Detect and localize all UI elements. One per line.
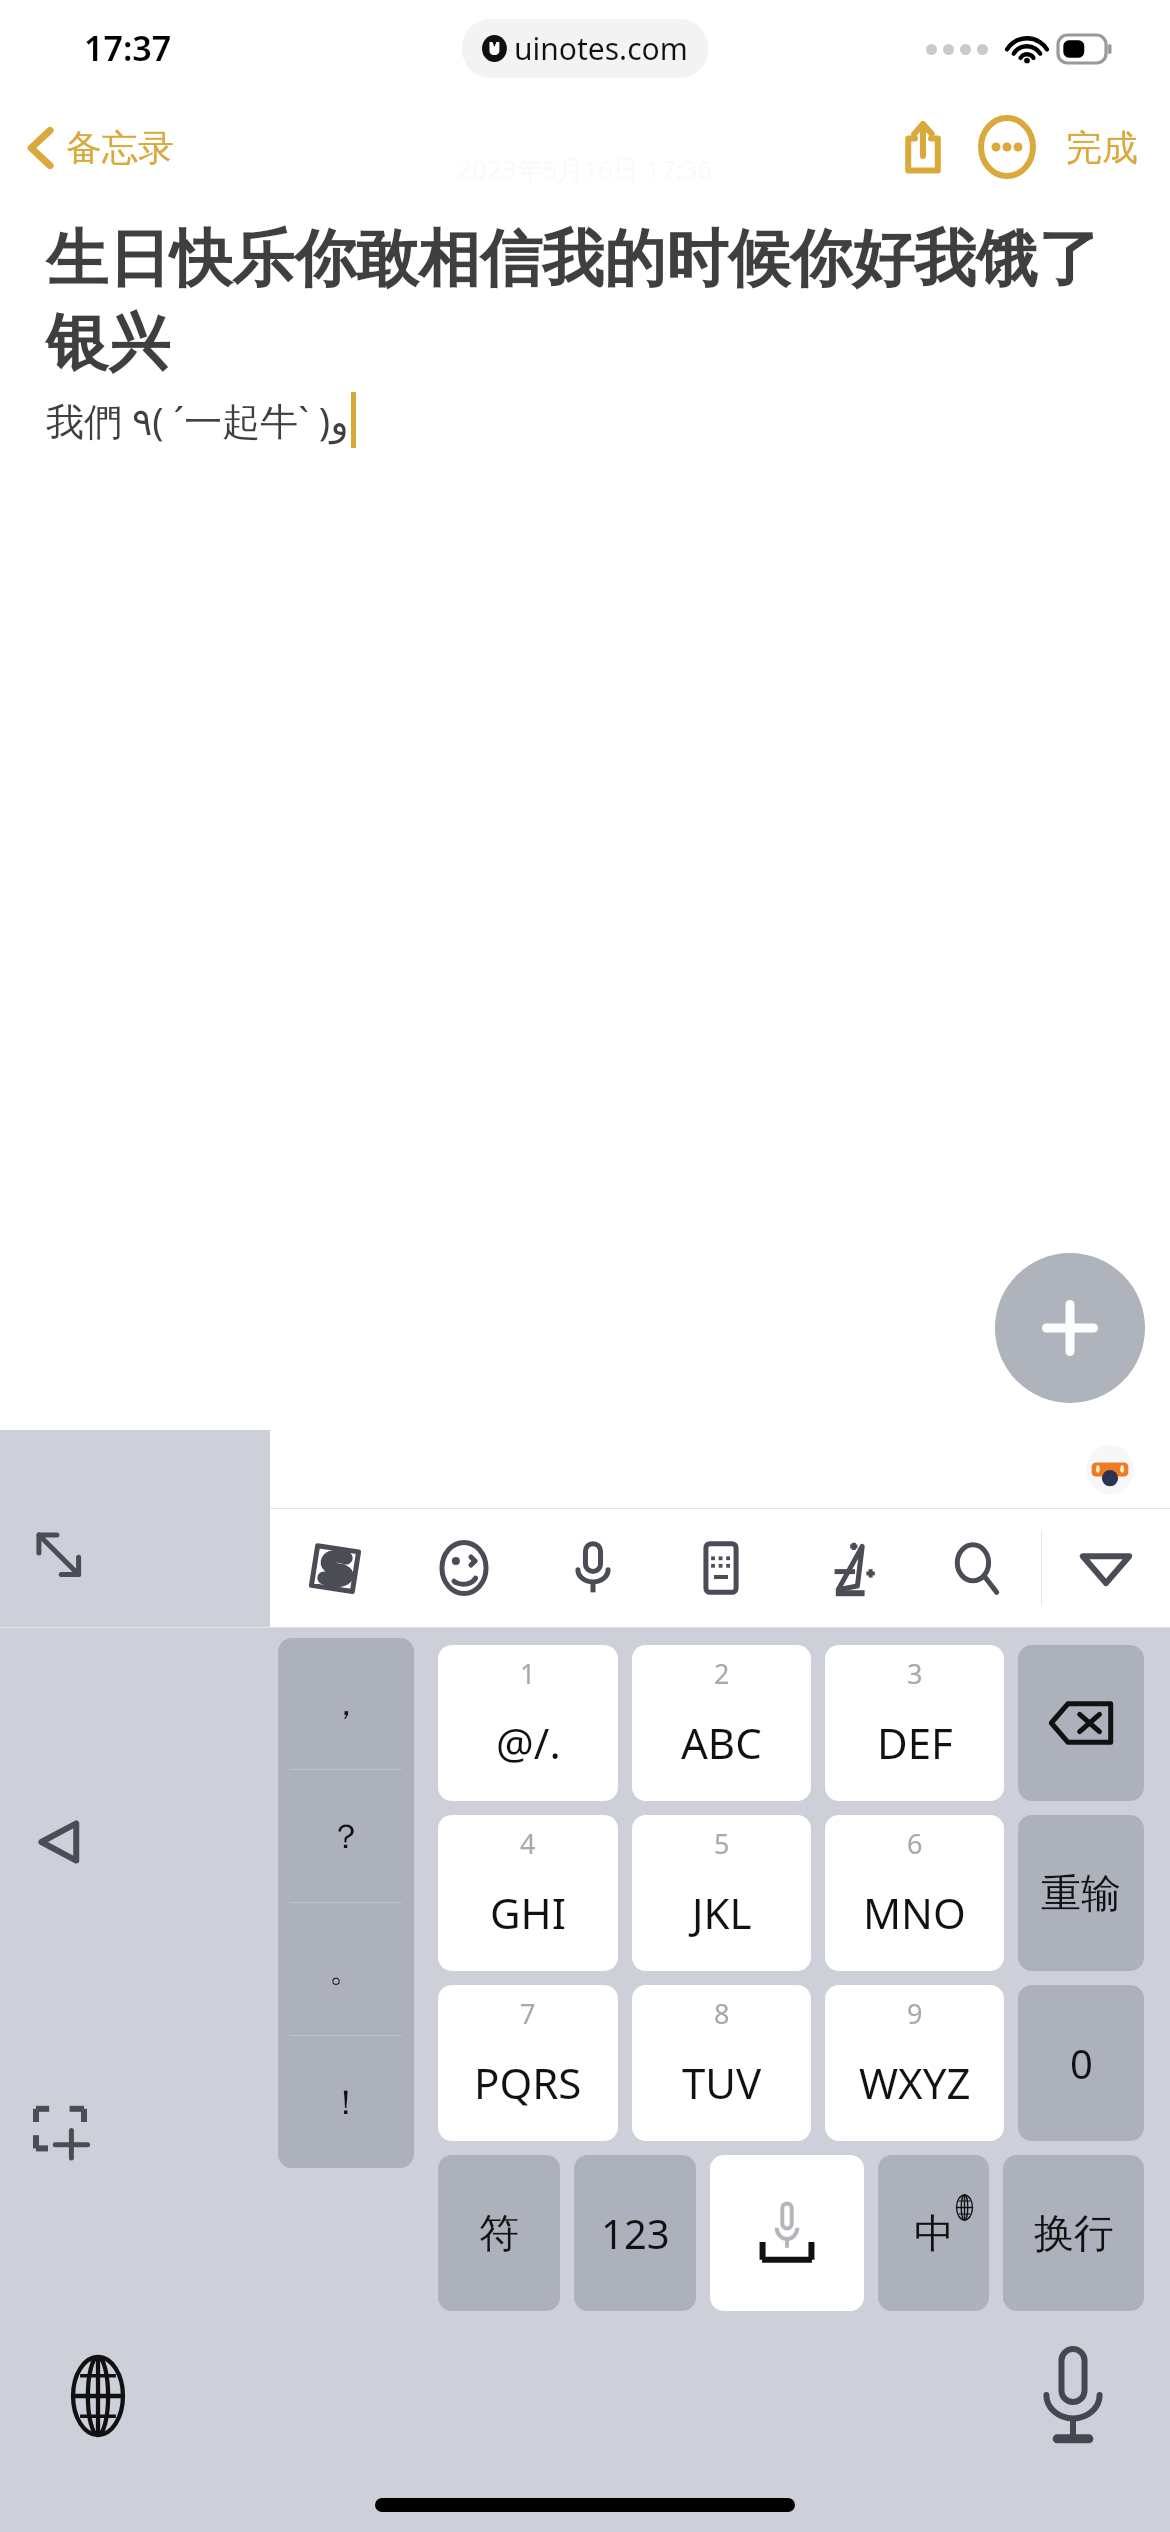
staticText: 换行 — [1034, 2208, 1114, 2258]
button[interactable]: Sogou input — [270, 1509, 399, 1627]
button[interactable]: 8 — [632, 1985, 811, 2141]
button[interactable]: 9 — [825, 1985, 1004, 2141]
button[interactable]: Assistant avatar — [1080, 1439, 1140, 1499]
staticText: 生日快乐你敢相信我的时候你好我饿了银兴 — [46, 220, 1130, 382]
staticText: 2 — [714, 1655, 730, 1692]
button[interactable]: Share — [886, 110, 960, 184]
button[interactable]: 5 — [632, 1815, 811, 1971]
button[interactable]: 完成 — [1058, 115, 1146, 180]
button[interactable]: 符 — [438, 2155, 560, 2311]
button[interactable]: 3 — [825, 1645, 1004, 1801]
button[interactable]: Switch language — [40, 2338, 155, 2453]
staticText: JKL — [692, 1884, 752, 1941]
staticText: GHI — [490, 1884, 566, 1941]
button[interactable]: Delete — [1018, 1645, 1144, 1801]
button[interactable]: 。 — [278, 1903, 414, 2035]
button[interactable]: 中 — [878, 2155, 989, 2311]
staticText: 。 — [329, 1948, 363, 1991]
button[interactable]: 2 — [632, 1645, 811, 1801]
staticText: 我們 ٩( ´一起牛` )و — [46, 394, 349, 446]
staticText: 0 — [1070, 2036, 1093, 2090]
button[interactable]: Dictation — [1015, 2338, 1130, 2453]
staticText: @/. — [496, 1714, 561, 1771]
staticText: 备忘录 — [66, 125, 174, 170]
button[interactable]: More options — [970, 110, 1044, 184]
staticText: ？ — [329, 1815, 363, 1858]
button[interactable]: 1 — [438, 1645, 618, 1801]
button[interactable]: Emoji — [399, 1509, 528, 1627]
staticText: 符 — [479, 2208, 519, 2258]
staticText: 9 — [907, 1995, 923, 2032]
button[interactable]: 重输 — [1018, 1815, 1144, 1971]
button[interactable]: 7 — [438, 1985, 618, 2141]
button[interactable]: 4 — [438, 1815, 618, 1971]
staticText: 中 — [914, 2208, 954, 2258]
button[interactable]: Resize keyboard — [12, 1508, 108, 1604]
staticText: ABC — [681, 1714, 762, 1771]
button[interactable]: Voice input — [528, 1509, 657, 1627]
staticText: 6 — [907, 1825, 923, 1862]
staticText: DEF — [877, 1714, 953, 1771]
staticText: 4 — [520, 1825, 536, 1862]
button[interactable]: 6 — [825, 1815, 1004, 1971]
staticText: uinotes.com — [514, 28, 688, 69]
staticText: 完成 — [1066, 125, 1138, 170]
staticText: ！ — [329, 2081, 363, 2124]
button[interactable]: Move keyboard — [12, 2080, 108, 2176]
button[interactable]: Space — [710, 2155, 864, 2311]
staticText: 5 — [714, 1825, 730, 1862]
staticText: ， — [329, 1682, 363, 1725]
staticText: 1 — [520, 1655, 536, 1692]
button[interactable]: Previous page — [12, 1794, 108, 1890]
staticText: 8 — [714, 1995, 730, 2032]
button[interactable]: Search — [913, 1509, 1041, 1627]
staticText: 3 — [907, 1655, 923, 1692]
staticText: 重输 — [1041, 1868, 1121, 1918]
button[interactable]: 换行 — [1003, 2155, 1144, 2311]
staticText: TUV — [682, 2054, 762, 2111]
button[interactable]: ？ — [278, 1770, 414, 1902]
button[interactable]: 123 — [574, 2155, 696, 2311]
staticText: WXYZ — [859, 2054, 971, 2111]
button[interactable]: Handwriting — [785, 1509, 913, 1627]
staticText: 123 — [601, 2206, 670, 2260]
button[interactable]: Add attachment — [995, 1253, 1145, 1403]
button[interactable]: 0 — [1018, 1985, 1144, 2141]
button[interactable]: Hide keyboard — [1042, 1509, 1170, 1627]
button[interactable]: ！ — [278, 2036, 414, 2168]
button[interactable]: 备忘录 — [22, 117, 180, 178]
button[interactable]: ， — [278, 1638, 414, 1769]
staticText: MNO — [863, 1884, 966, 1941]
staticText: 7 — [520, 1995, 536, 2032]
staticText: PQRS — [474, 2054, 582, 2111]
staticText: 17:37 — [84, 25, 172, 71]
button[interactable]: Keyboard layout — [657, 1509, 785, 1627]
